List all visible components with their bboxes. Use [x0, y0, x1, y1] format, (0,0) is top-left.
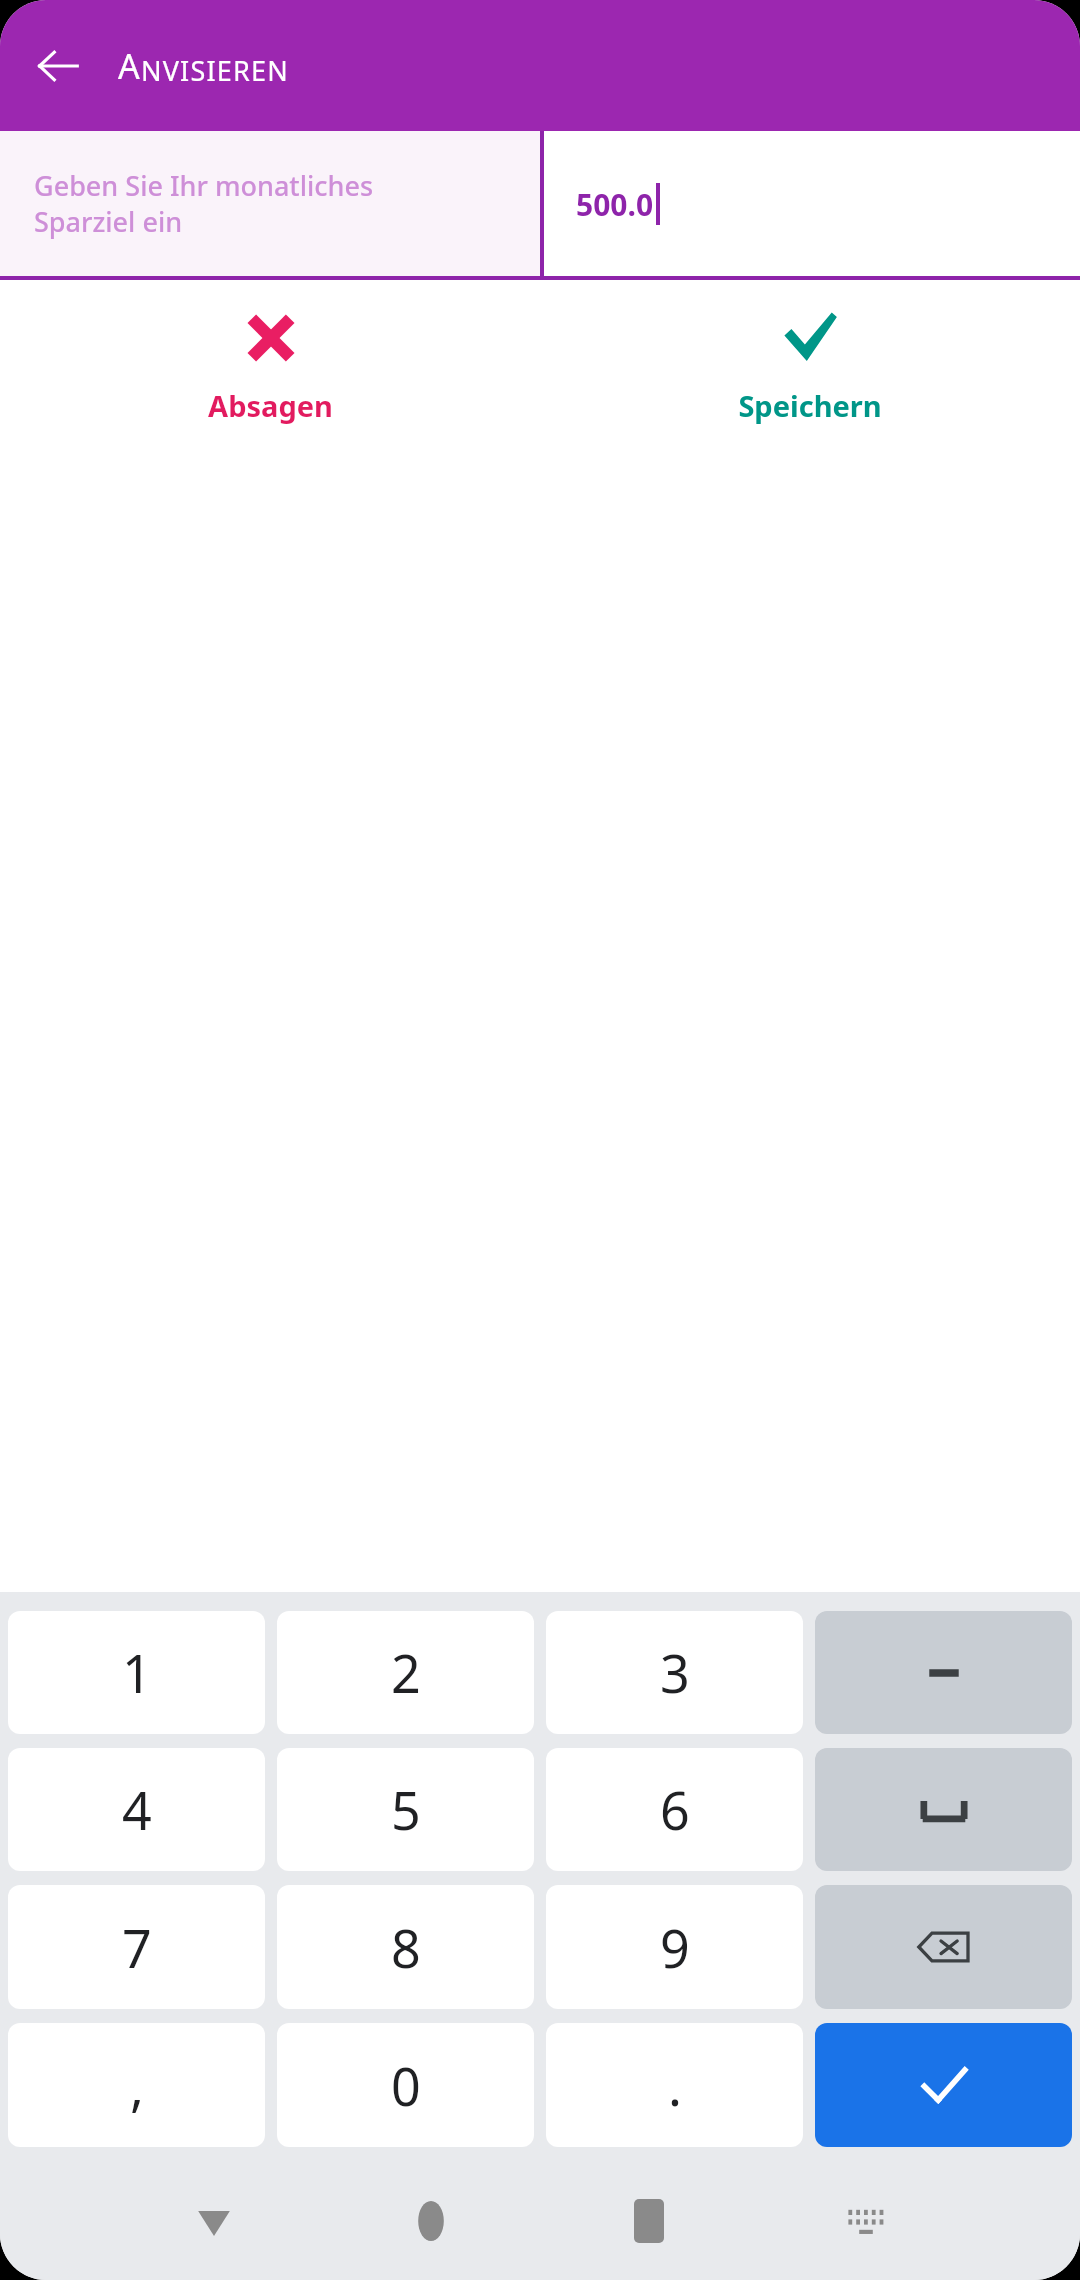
button[interactable]: Back — [170, 2177, 258, 2265]
button[interactable]: . — [546, 2023, 803, 2147]
button[interactable]: 8 — [277, 1885, 534, 2009]
staticText: 1 — [122, 1637, 152, 1708]
staticText: NVISIEREN — [141, 52, 289, 89]
staticText: 500.0 — [576, 184, 654, 225]
button[interactable]: Speichern — [540, 280, 1080, 470]
button[interactable]: 6 — [546, 1748, 803, 1871]
staticText: 8 — [391, 1912, 421, 1983]
button[interactable]: 3 — [546, 1611, 803, 1734]
button[interactable]: Home — [387, 2177, 475, 2265]
button[interactable]: Switch keyboard — [822, 2177, 910, 2265]
staticText: A — [118, 43, 141, 89]
button[interactable]: 9 — [546, 1885, 803, 2009]
button[interactable]: 1 — [8, 1611, 265, 1734]
button[interactable]: 2 — [277, 1611, 534, 1734]
staticText: Speichern — [738, 386, 882, 425]
button[interactable]: 4 — [8, 1748, 265, 1871]
button[interactable]: Enter — [815, 2023, 1072, 2147]
staticText: 2 — [391, 1637, 421, 1708]
staticText: . — [668, 2050, 682, 2121]
staticText: Absagen — [208, 386, 333, 425]
staticText: 9 — [660, 1912, 690, 1983]
staticText: , — [130, 2050, 144, 2121]
button[interactable]: 0 — [277, 2023, 534, 2147]
staticText: 6 — [660, 1774, 690, 1845]
staticText: 5 — [391, 1774, 421, 1845]
button[interactable]: Back — [22, 30, 94, 102]
button[interactable]: Backspace — [815, 1885, 1072, 2009]
button[interactable]: 500.0 — [544, 131, 1080, 276]
staticText: 4 — [122, 1774, 152, 1845]
staticText: 3 — [660, 1637, 690, 1708]
button[interactable]: 5 — [277, 1748, 534, 1871]
button[interactable]: Absagen — [0, 280, 540, 470]
button[interactable]: Space — [815, 1748, 1072, 1871]
button[interactable]: Recents — [605, 2177, 693, 2265]
button[interactable]: Geben Sie Ihr monatliches Sparziel ein — [0, 131, 540, 276]
staticText: 7 — [122, 1912, 152, 1983]
staticText: Geben Sie Ihr monatliches Sparziel ein — [34, 167, 374, 240]
button[interactable]: 7 — [8, 1885, 265, 2009]
staticText: 0 — [391, 2050, 421, 2121]
button[interactable]: , — [8, 2023, 265, 2147]
button[interactable]: Minus — [815, 1611, 1072, 1734]
